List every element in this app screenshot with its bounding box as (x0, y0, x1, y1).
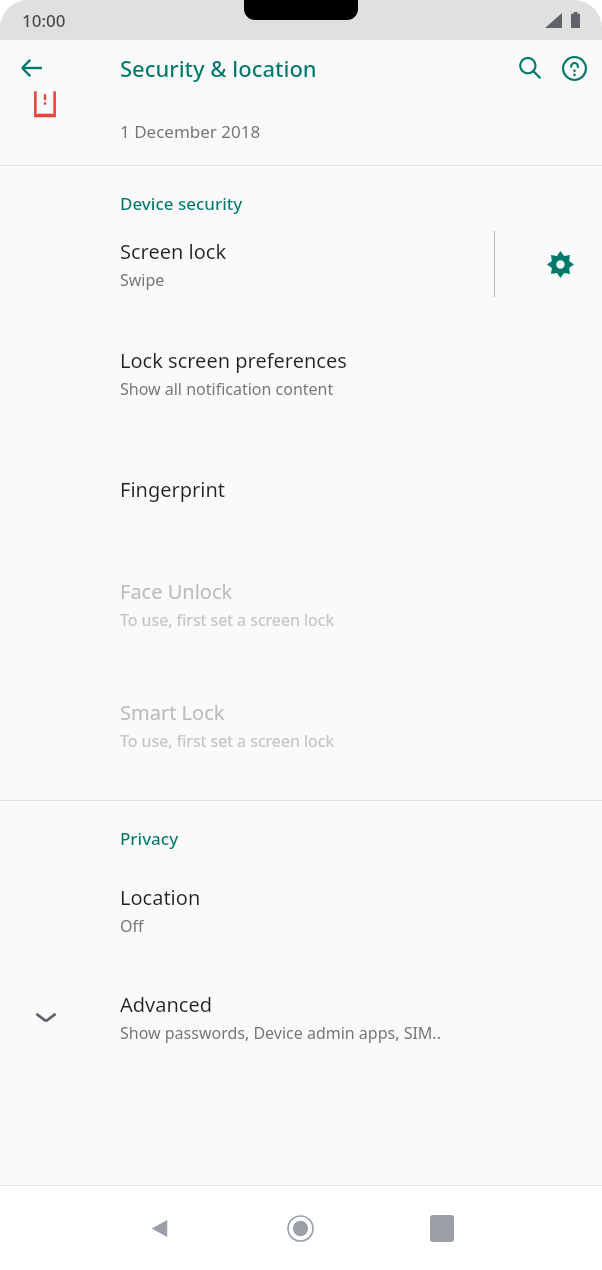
staticText: Show passwords, Device admin apps, SIM.. (120, 1022, 441, 1044)
staticText: Advanced (120, 991, 212, 1018)
staticText: Face Unlock (120, 578, 233, 605)
button[interactable]: Screen lock settings (494, 231, 602, 297)
staticText: Location (120, 884, 201, 911)
staticText: 10:00 (22, 9, 66, 32)
staticText: Lock screen preferences (120, 347, 347, 374)
staticText: Security & location (120, 53, 317, 83)
button[interactable]: Home (230, 1198, 371, 1258)
staticText: Off (120, 915, 144, 937)
button[interactable]: Back (90, 1198, 230, 1258)
staticText: Show all notification content (120, 378, 334, 400)
staticText: 1 December 2018 (120, 120, 261, 143)
button[interactable]: Face Unlock (0, 544, 602, 665)
button[interactable] (0, 215, 602, 313)
button[interactable]: Lock screen preferences (0, 313, 602, 434)
button[interactable]: Help (554, 44, 594, 92)
button[interactable]: Back (8, 44, 56, 92)
staticText: Privacy (120, 827, 179, 850)
staticText: To use, first set a screen lock (120, 730, 335, 752)
button[interactable]: Location (0, 850, 602, 971)
button[interactable]: Fingerprint (0, 434, 602, 544)
staticText: Swipe (120, 269, 165, 291)
button[interactable]: Recent apps (371, 1198, 512, 1258)
button[interactable]: Smart Lock (0, 665, 602, 786)
staticText: Fingerprint (120, 476, 226, 503)
button[interactable]: Search (506, 44, 554, 92)
staticText: Screen lock (120, 238, 227, 265)
button[interactable] (0, 96, 602, 165)
staticText: To use, first set a screen lock (120, 609, 335, 631)
button[interactable] (0, 971, 602, 1063)
staticText: Device security (120, 192, 243, 215)
staticText: Smart Lock (120, 699, 225, 726)
